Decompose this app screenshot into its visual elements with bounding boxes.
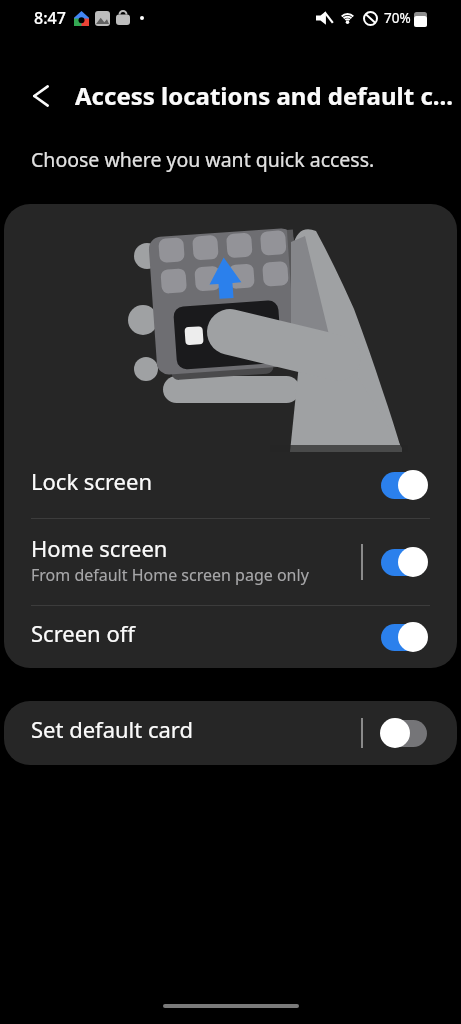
staticText: Access locations and default c... xyxy=(75,79,453,112)
staticText: 8:47 xyxy=(34,7,66,29)
staticText: Lock screen xyxy=(31,466,153,496)
button[interactable]: Set default card xyxy=(4,701,457,765)
staticText: Screen off xyxy=(31,618,135,648)
staticText: Set default card xyxy=(31,714,194,744)
button[interactable]: Lock screen xyxy=(4,452,457,518)
button[interactable]: Home screen xyxy=(4,519,457,605)
staticText: 70% xyxy=(384,9,411,27)
button[interactable]: Screen off xyxy=(4,606,457,668)
button[interactable]: Access locations and default c... xyxy=(29,79,453,112)
staticText: From default Home screen page only xyxy=(31,564,309,586)
staticText: Choose where you want quick access. xyxy=(31,146,375,173)
staticText: Home screen xyxy=(31,533,168,563)
